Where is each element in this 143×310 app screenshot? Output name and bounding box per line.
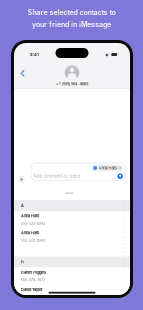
button[interactable]: David Taylor — [14, 284, 130, 294]
button[interactable]: Add attachment — [18, 176, 25, 183]
button[interactable]: Daniel Higgins — [14, 267, 130, 284]
staticText: 555-478-7672 — [21, 278, 45, 282]
staticText: +1 (555) 564-8683 — [56, 81, 88, 86]
button[interactable]: Back — [17, 65, 28, 81]
button[interactable]: Anna Haro — [14, 228, 130, 245]
button[interactable]: Send — [117, 173, 123, 179]
staticText: David Taylor — [21, 287, 43, 292]
staticText: 9:41 — [30, 52, 39, 57]
staticText: Daniel Higgins — [21, 270, 46, 275]
staticText: Anna Haro — [99, 166, 117, 170]
staticText: Anna Haro — [21, 213, 39, 218]
staticText: Add comment or Send — [34, 174, 81, 179]
button[interactable]: Anna Haro — [14, 211, 130, 228]
staticText: your friend in iMessage — [32, 20, 111, 29]
staticText: Share selected contacts to — [27, 8, 115, 17]
staticText: 555-522-8243 — [21, 238, 45, 242]
staticText: 555-522-8243 — [21, 221, 45, 225]
staticText: D — [21, 260, 24, 264]
staticText: A — [21, 203, 24, 208]
staticText: Anna Haro — [21, 230, 39, 235]
